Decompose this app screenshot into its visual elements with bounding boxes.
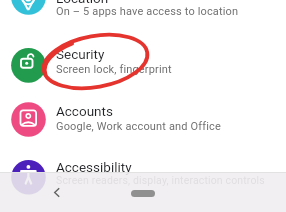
staticText: Google, Work account and Office [56, 120, 221, 133]
staticText: Accounts [56, 103, 113, 119]
button[interactable] [0, 148, 286, 204]
button[interactable] [131, 190, 155, 197]
staticText: Screen readers, display, interaction con… [56, 174, 265, 186]
button[interactable] [0, 92, 286, 148]
button[interactable] [45, 181, 67, 203]
staticText: Accessibility [56, 159, 132, 175]
staticText: Screen lock, fingerprint [56, 63, 172, 76]
button[interactable] [0, 0, 286, 30]
staticText: Security [56, 46, 105, 62]
button[interactable] [0, 30, 286, 86]
staticText: Location [56, 0, 109, 6]
staticText: On – 5 apps have access to location [56, 5, 239, 18]
